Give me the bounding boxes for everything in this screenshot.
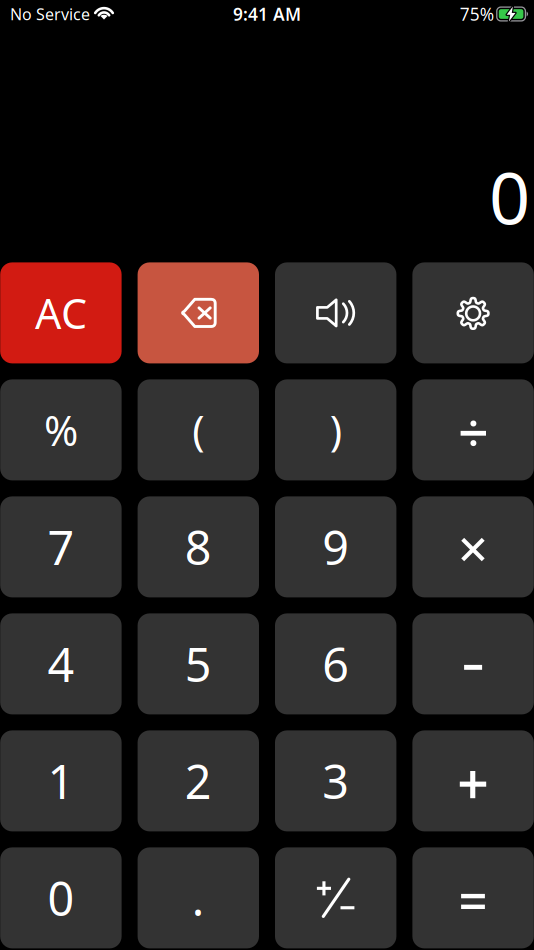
button[interactable] [275,379,396,480]
button[interactable] [0,613,122,714]
button[interactable]: Divide [412,379,534,480]
staticText: 9:41 AM [233,2,301,25]
button[interactable] [0,496,122,597]
staticText: 8 [185,516,212,578]
staticText: 2 [185,750,212,812]
staticText: ) [330,402,342,457]
button[interactable] [275,730,396,831]
button[interactable] [275,613,396,714]
button[interactable] [138,613,259,714]
button[interactable]: All clear [0,262,122,363]
staticText: No Service [10,3,90,25]
button[interactable] [138,730,259,831]
button[interactable]: Plus minus [275,847,396,948]
staticText: AC [35,285,87,340]
button[interactable] [138,847,259,948]
button[interactable]: Settings [412,262,534,363]
button[interactable]: Delete [138,262,259,363]
staticText: ( [192,402,204,457]
staticText: 7 [47,516,74,578]
staticText: 5 [185,633,212,695]
staticText: 0 [489,149,530,244]
button[interactable] [0,847,122,948]
button[interactable]: Equals [412,847,534,948]
button[interactable]: Multiply [412,496,534,597]
button[interactable] [138,379,259,480]
staticText: 4 [47,633,74,695]
staticText: . [192,867,205,929]
staticText: 9 [322,516,349,578]
button[interactable] [0,379,122,480]
staticText: 3 [322,750,349,812]
button[interactable] [138,496,259,597]
staticText: 0 [47,867,74,929]
staticText: 75% [460,2,494,25]
button[interactable]: Plus [412,730,534,831]
staticText: % [44,402,78,457]
button[interactable] [0,730,122,831]
button[interactable]: Minus [412,613,534,714]
staticText: 6 [322,633,349,695]
staticText: 1 [47,750,74,812]
button[interactable] [275,496,396,597]
button[interactable]: Sound [275,262,396,363]
